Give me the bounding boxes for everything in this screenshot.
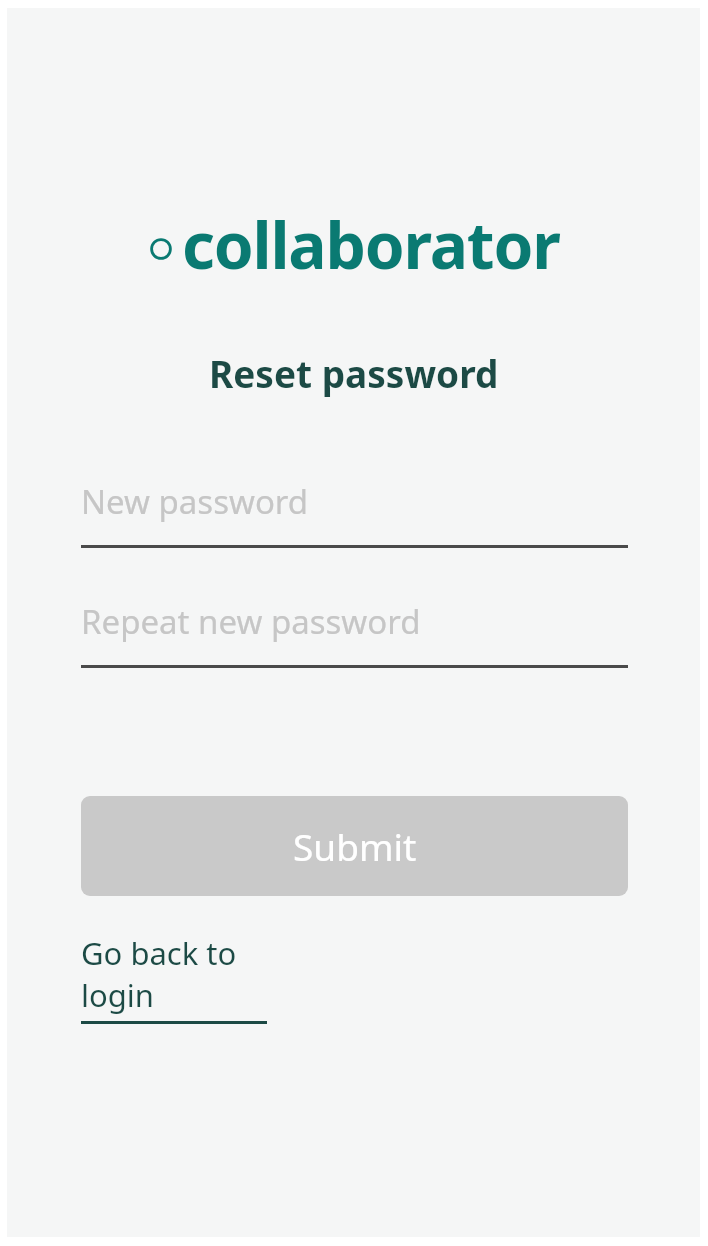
button[interactable]: New password — [81, 473, 628, 548]
button[interactable]: Submit — [81, 796, 628, 896]
staticText: New password — [81, 479, 309, 524]
staticText: collaborator — [182, 201, 560, 288]
staticText: Repeat new password — [81, 599, 421, 644]
staticText: Go back to login — [81, 932, 267, 1016]
button[interactable]: Repeat new password — [81, 593, 628, 668]
staticText: Submit — [293, 821, 417, 871]
other: Collaborator logo mark — [149, 237, 173, 261]
button[interactable]: Go back to login — [81, 932, 267, 1024]
staticText: Reset password — [209, 348, 499, 398]
